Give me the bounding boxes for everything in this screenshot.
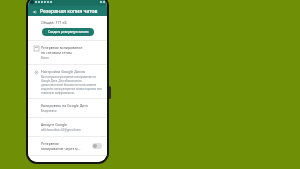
staticText: Резервное <box>41 141 59 146</box>
staticText: по сотовым сетям <box>41 50 72 55</box>
button[interactable]: Сохранить видео <box>28 156 107 162</box>
staticText: Копировать на Google Диск <box>41 103 89 108</box>
button[interactable]: Резервное копирование <box>28 41 107 64</box>
button[interactable]: Резервное <box>28 137 107 155</box>
button[interactable]: Back <box>31 8 38 15</box>
staticText: Резервное копирование <box>41 45 83 50</box>
staticText: Выкл. <box>41 56 50 60</box>
button[interactable]: Аккаунт Google <box>28 118 107 136</box>
staticText: adikhomidovich2@gmail.com <box>41 128 81 132</box>
button[interactable]: Копировать на Google Диск <box>28 99 107 117</box>
staticText: Вы настроили резервное копирование на Go… <box>41 75 102 95</box>
button[interactable]: Создать резервную копию <box>42 28 94 36</box>
staticText: Резервная копия чатов <box>40 8 98 15</box>
staticText: Аккаунт Google <box>41 122 68 127</box>
staticText: Настройки Google Диска <box>41 69 86 74</box>
staticText: копирование через м… <box>41 146 81 151</box>
staticText: Общий: 171 кБ <box>41 20 67 25</box>
staticText: Создать резервную копию <box>48 30 89 34</box>
staticText: Ежедневно <box>41 109 57 113</box>
